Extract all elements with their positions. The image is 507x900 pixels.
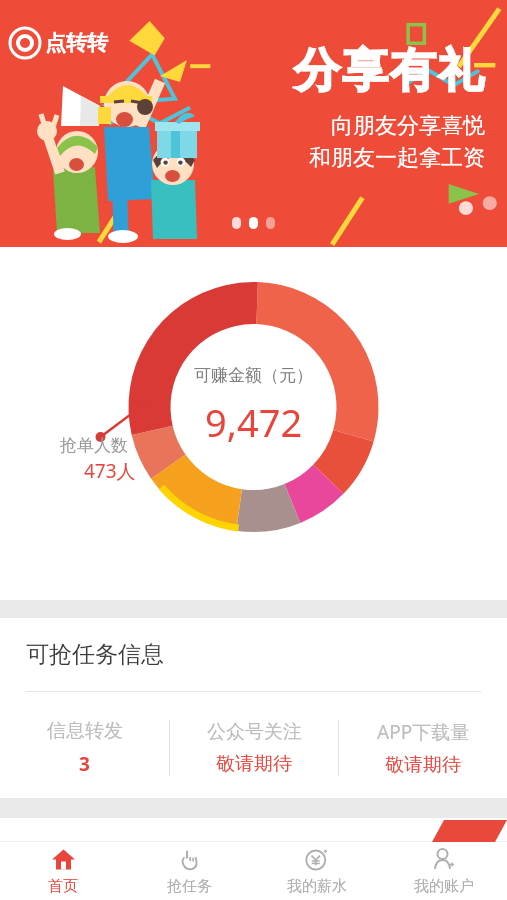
staticText: 3: [79, 751, 90, 777]
button[interactable]: 首页: [0, 842, 126, 900]
staticText: 向朋友分享喜悦: [331, 112, 485, 140]
staticText: 473人: [84, 458, 136, 484]
staticText: 敬请期待: [385, 753, 461, 777]
button[interactable]: 点转转: [0, 0, 507, 247]
staticText: 我的账户: [414, 877, 474, 896]
staticText: 抢单人数: [60, 435, 128, 456]
staticText: 可赚金额（元）: [194, 365, 313, 386]
button[interactable]: 公众号关注: [170, 712, 338, 784]
button[interactable]: 我的薪水: [253, 842, 380, 900]
staticText: 我的薪水: [287, 877, 347, 896]
other: 活动: [432, 820, 507, 842]
staticText: 信息转发: [47, 719, 123, 743]
button[interactable]: APP下载量: [339, 712, 507, 784]
staticText: 分享有礼: [293, 42, 485, 100]
staticText: 9,472: [205, 396, 303, 448]
button[interactable]: 抢任务: [126, 842, 253, 900]
staticText: 抢任务: [167, 877, 212, 896]
staticText: 首页: [48, 877, 78, 896]
staticText: 可抢任务信息: [26, 640, 164, 669]
staticText: 公众号关注: [207, 720, 302, 744]
staticText: 和朋友一起拿工资: [309, 144, 485, 172]
staticText: 敬请期待: [216, 752, 292, 776]
button[interactable]: 我的账户: [380, 842, 507, 900]
staticText: 点转转: [45, 30, 108, 56]
button[interactable]: 信息转发: [0, 712, 169, 784]
staticText: APP下载量: [377, 719, 470, 745]
